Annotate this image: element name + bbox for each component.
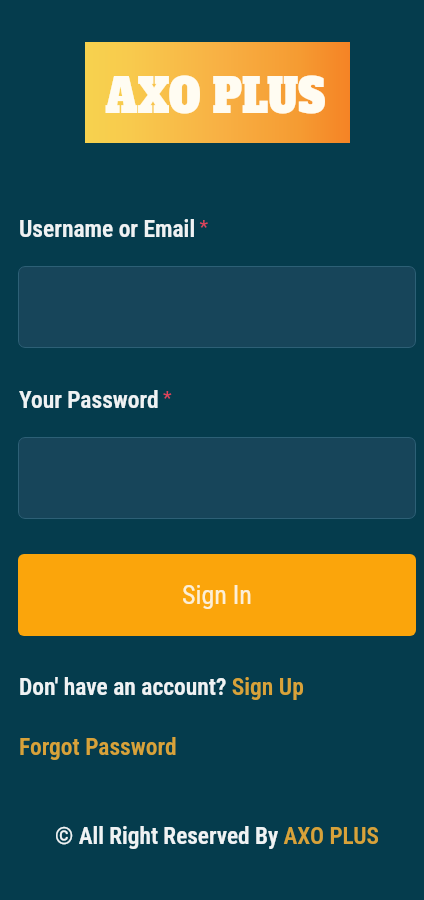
button[interactable]: Sign In — [18, 554, 416, 636]
staticText: Don' have an account? Sign Up — [19, 673, 304, 701]
button[interactable]: Forgot Password — [19, 733, 177, 761]
staticText: Username or Email * — [19, 215, 209, 243]
staticText: Sign In — [182, 580, 252, 610]
button[interactable]: Username or Email input — [18, 266, 416, 348]
staticText: © All Right Reserved By AXO PLUS — [55, 822, 380, 849]
staticText: Forgot Password — [19, 733, 177, 761]
staticText: Your Password * — [19, 386, 172, 414]
button[interactable]: Don' have an account? Sign Up — [19, 673, 304, 701]
staticText: AXO PLUS — [105, 63, 326, 129]
other: AXO PLUS logo — [85, 42, 350, 143]
button[interactable]: Password input — [18, 437, 416, 519]
